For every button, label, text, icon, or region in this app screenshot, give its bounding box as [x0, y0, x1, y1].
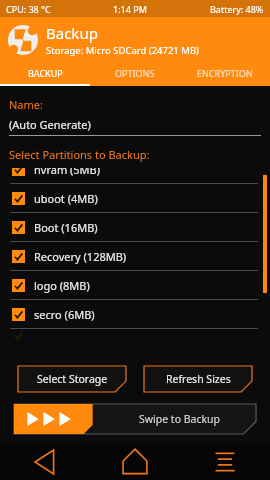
button[interactable]: BACKUP: [0, 62, 90, 84]
staticText: 1:14 PM: [113, 3, 147, 15]
button[interactable]: Boot (16MB): [0, 213, 270, 241]
button[interactable]: Menu: [180, 444, 270, 480]
staticText: (Auto Generate): [9, 117, 91, 132]
staticText: Backup: [46, 23, 98, 43]
staticText: secro (6MB): [34, 307, 95, 322]
staticText: Name:: [9, 97, 43, 112]
button[interactable]: OPTIONS: [90, 62, 180, 84]
staticText: Boot (16MB): [34, 220, 98, 235]
button[interactable]: logo (8MB): [0, 271, 270, 299]
staticText: Storage: Micro SDCard (24721 MB): [46, 44, 199, 57]
button[interactable]: Select Storage: [18, 366, 126, 392]
staticText: Select Storage: [37, 372, 108, 386]
button[interactable]: Home: [90, 444, 180, 480]
staticText: Select Partitions to Backup:: [9, 147, 150, 162]
staticText: CPU: 38 °C: [6, 3, 51, 15]
staticText: OPTIONS: [115, 67, 155, 79]
staticText: Swipe to Backup: [139, 412, 221, 426]
staticText: Recovery (128MB): [34, 249, 127, 264]
button[interactable]: Refresh Sizes: [144, 366, 252, 392]
button[interactable]: ENCRYPTION: [180, 62, 270, 84]
button[interactable]: Swipe to Backup: [14, 404, 256, 434]
staticText: nvram (5MB): [34, 168, 101, 177]
button[interactable]: uboot (4MB): [0, 184, 270, 212]
button[interactable]: secro (6MB): [0, 300, 270, 328]
staticText: Refresh Sizes: [166, 372, 231, 386]
staticText: logo (8MB): [34, 278, 90, 293]
button[interactable]: Recovery (128MB): [0, 242, 270, 270]
staticText: uboot (4MB): [34, 191, 98, 206]
button[interactable]: nvram (5MB): [0, 168, 270, 183]
staticText: BACKUP: [28, 67, 63, 79]
staticText: ENCRYPTION: [197, 67, 253, 79]
other: TWRP logo: [8, 25, 38, 55]
button[interactable]: Back: [0, 444, 90, 480]
staticText: Battery: 48%: [210, 3, 264, 15]
